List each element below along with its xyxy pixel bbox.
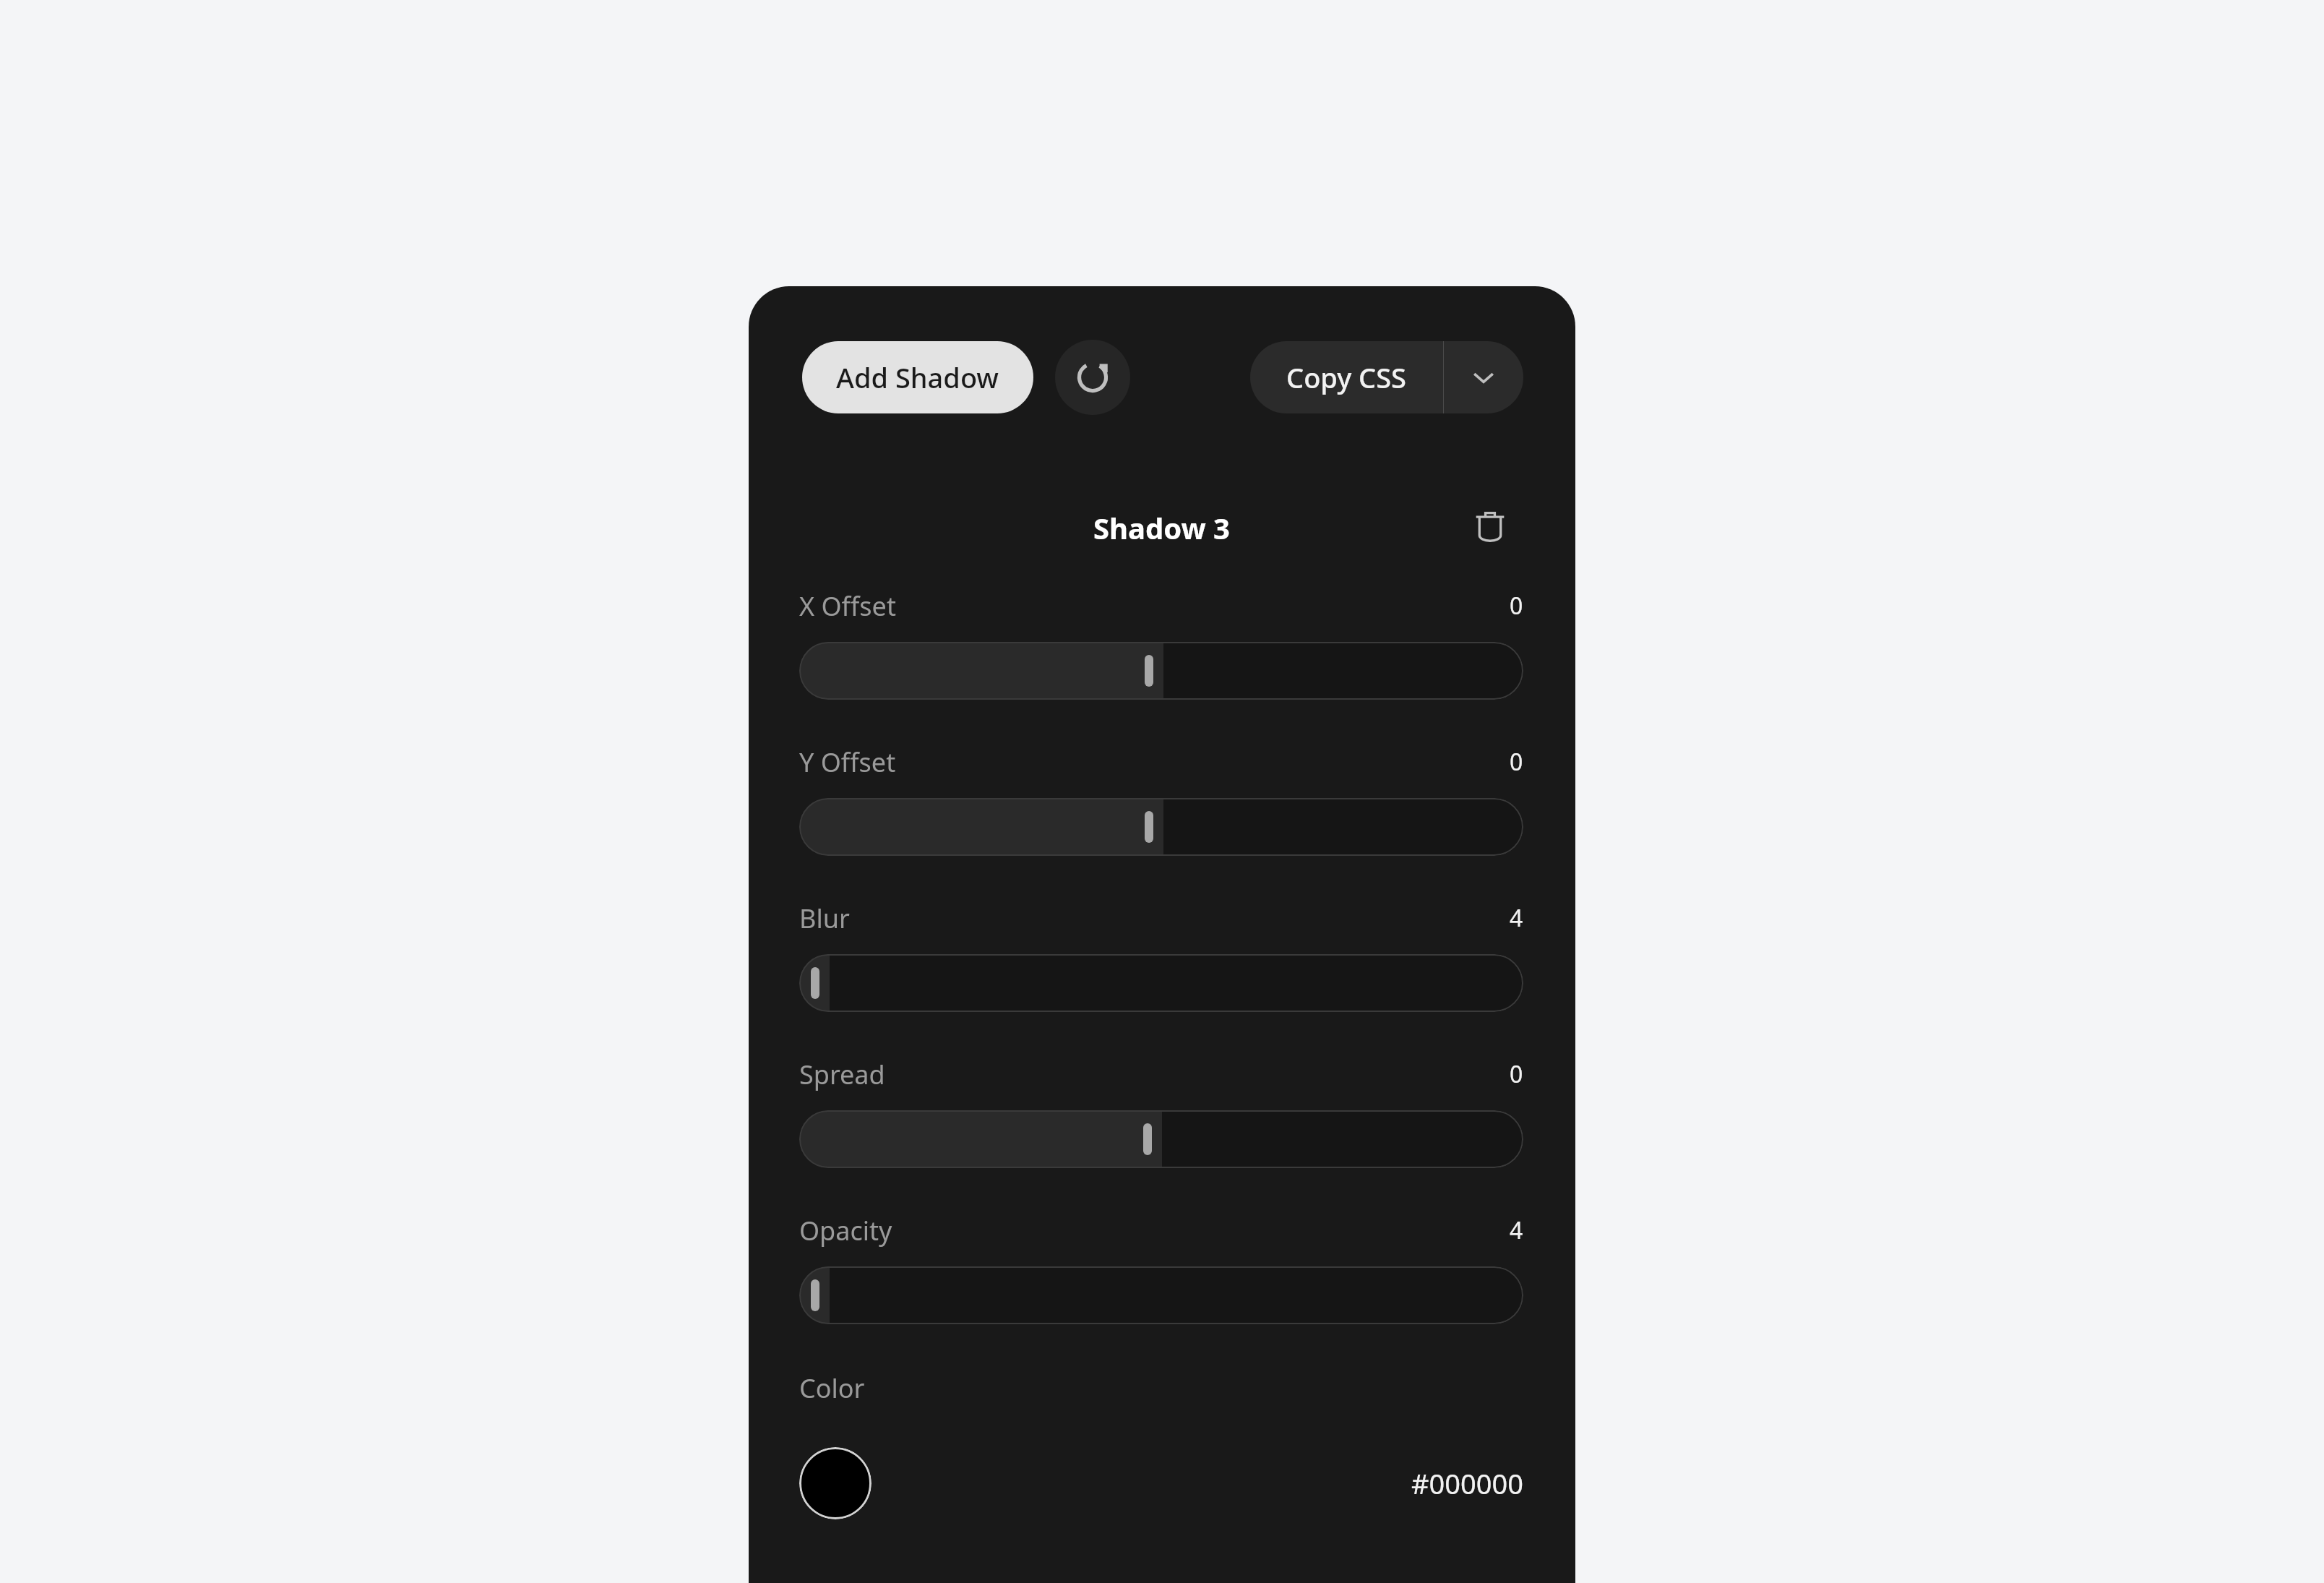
staticText: Copy CSS (1286, 359, 1407, 396)
staticText: Spread (799, 1057, 885, 1092)
button[interactable]: Copy CSS (1250, 341, 1443, 413)
button[interactable] (799, 1266, 1523, 1324)
staticText: Color (799, 1370, 865, 1406)
button[interactable] (799, 798, 1523, 856)
staticText: 0 (1510, 1058, 1523, 1090)
staticText: X Offset (799, 588, 896, 624)
staticText: Shadow 3 (1093, 508, 1230, 547)
button[interactable]: Delete shadow (1461, 497, 1519, 555)
button[interactable]: #000000 (1411, 1464, 1523, 1502)
button[interactable]: Reset shadows (1055, 340, 1130, 415)
staticText: Opacity (799, 1213, 892, 1248)
button[interactable] (799, 642, 1523, 700)
staticText: 4 (1510, 1214, 1523, 1246)
staticText: 4 (1510, 902, 1523, 934)
staticText: #000000 (1411, 1464, 1523, 1502)
staticText: Blur (799, 901, 850, 936)
staticText: Y Offset (799, 745, 896, 780)
staticText: Add Shadow (836, 359, 999, 396)
button[interactable]: More copy options (1444, 341, 1523, 413)
button[interactable] (799, 954, 1523, 1012)
button[interactable]: Shadow colour swatch (799, 1447, 871, 1519)
button[interactable]: Add Shadow (802, 341, 1033, 413)
staticText: 0 (1510, 590, 1523, 622)
button[interactable] (799, 1110, 1523, 1168)
staticText: 0 (1510, 746, 1523, 778)
